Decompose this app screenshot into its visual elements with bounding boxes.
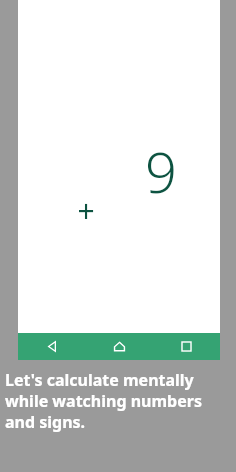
staticText: + (77, 190, 95, 231)
staticText: 9 (145, 133, 177, 203)
button[interactable]: Recent apps (153, 333, 220, 360)
staticText: Let's calculate mentally while watching … (5, 369, 231, 433)
button[interactable]: Home (86, 333, 153, 360)
button[interactable]: Back (18, 333, 86, 360)
